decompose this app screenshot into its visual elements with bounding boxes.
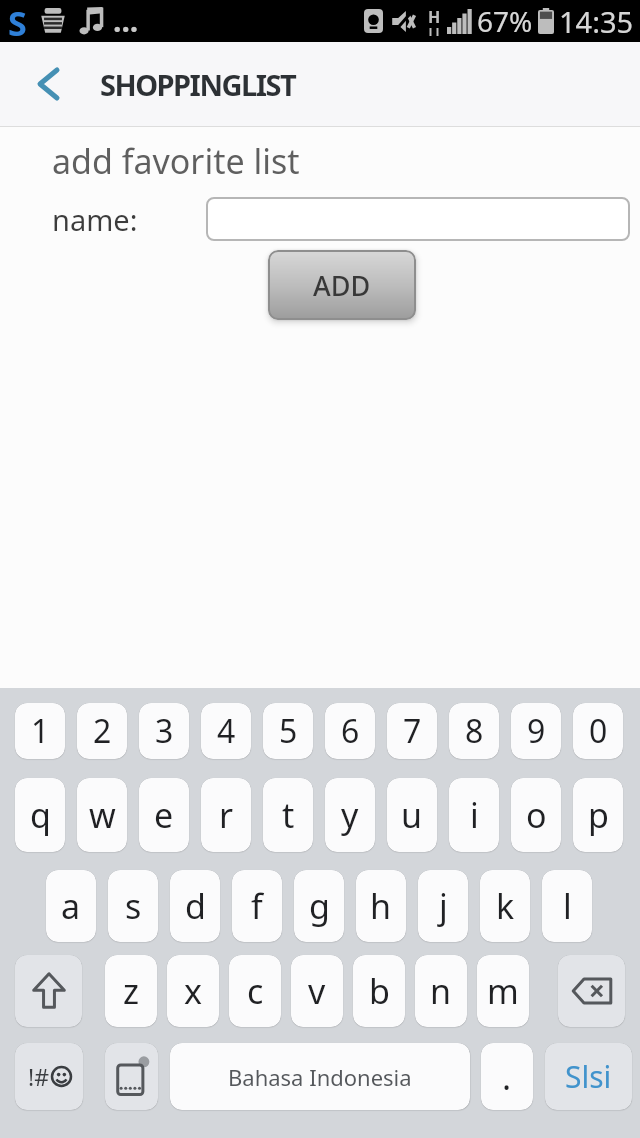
button[interactable]: n [415,955,467,1027]
button[interactable]: b [353,955,405,1027]
button[interactable]: j [418,870,468,942]
button[interactable]: r [201,778,251,852]
button[interactable]: w [77,778,127,852]
button[interactable]: y [325,778,375,852]
button[interactable]: z [105,955,157,1027]
button[interactable]: h [356,870,406,942]
staticText: j [439,883,448,929]
staticText: l [563,883,572,929]
button[interactable]: Bahasa Indonesia [170,1043,470,1110]
staticText: o [526,792,547,838]
button[interactable]: p [573,778,623,852]
staticText: name: [52,200,138,239]
staticText: c [247,968,264,1014]
staticText: H [428,6,441,28]
button[interactable]: u [387,778,437,852]
button[interactable]: q [15,778,65,852]
staticText: 8 [465,709,484,753]
staticText: 67% [477,2,533,40]
button[interactable]: e [139,778,189,852]
button[interactable]: 0 [573,703,623,759]
button[interactable]: x [167,955,219,1027]
staticText: 7 [403,709,422,753]
button[interactable] [0,42,96,126]
button[interactable]: c [229,955,281,1027]
staticText: add favorite list [52,138,300,184]
button[interactable]: 1 [15,703,65,759]
staticText: ... [113,0,139,32]
staticText: t [282,792,295,838]
staticText: n [430,968,452,1014]
button[interactable]: o [511,778,561,852]
staticText: h [370,883,392,929]
staticText: 1 [31,709,50,753]
staticText: 14:35 [559,2,634,41]
button[interactable]: m [477,955,529,1027]
staticText: Slsi [565,1056,612,1097]
staticText: ADD [313,267,371,304]
button[interactable]: d [170,870,220,942]
button[interactable]: k [480,870,530,942]
staticText: 4 [217,709,236,753]
staticText: SHOPPINGLIST [100,65,296,104]
staticText: !# [28,1061,50,1092]
staticText: m [487,968,519,1014]
button[interactable]: 4 [201,703,251,759]
staticText: z [123,968,139,1014]
button[interactable]: 8 [449,703,499,759]
staticText: a [61,883,81,929]
button[interactable]: g [294,870,344,942]
button[interactable]: ADD [268,250,416,320]
staticText: g [309,883,330,929]
button[interactable]: 9 [511,703,561,759]
button[interactable]: !# [15,1043,83,1110]
staticText: x [184,968,202,1014]
staticText: 0 [589,709,608,753]
button[interactable]: v [291,955,343,1027]
staticText: 9 [527,709,546,753]
staticText: r [219,792,234,838]
staticText: e [154,792,174,838]
staticText: b [369,968,390,1014]
staticText: 2 [93,709,112,753]
button[interactable]: i [449,778,499,852]
staticText: s [125,883,142,929]
button[interactable] [105,1043,158,1110]
button[interactable]: l [542,870,592,942]
button[interactable]: . [481,1043,533,1110]
staticText: 6 [341,709,360,753]
staticText: y [341,792,359,838]
staticText: u [401,792,423,838]
button[interactable] [15,955,82,1027]
staticText: 3 [155,709,174,753]
button[interactable] [206,197,630,241]
staticText: k [496,883,515,929]
button[interactable]: 7 [387,703,437,759]
staticText: S [8,0,27,42]
staticText: Bahasa Indonesia [228,1062,412,1092]
staticText: v [308,968,326,1014]
button[interactable]: t [263,778,313,852]
staticText: i [470,792,479,838]
button[interactable]: Slsi [545,1043,632,1110]
staticText: . [502,1054,512,1100]
staticText: f [251,883,263,929]
button[interactable]: a [46,870,96,942]
button[interactable]: 6 [325,703,375,759]
staticText: q [30,792,51,838]
button[interactable] [558,955,625,1027]
button[interactable]: 5 [263,703,313,759]
button[interactable]: 3 [139,703,189,759]
staticText: p [588,792,609,838]
staticText: w [89,792,116,838]
staticText: 5 [279,709,298,753]
button[interactable]: f [232,870,282,942]
staticText: d [185,883,206,929]
button[interactable]: 2 [77,703,127,759]
button[interactable]: s [108,870,158,942]
